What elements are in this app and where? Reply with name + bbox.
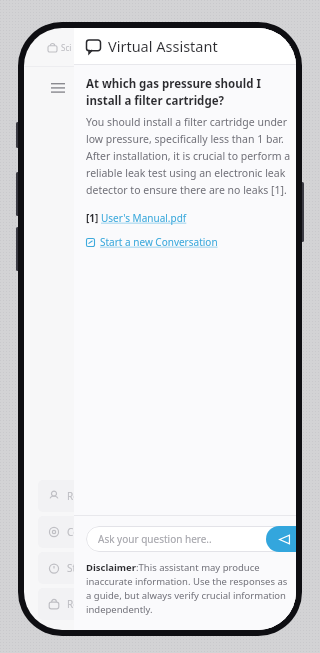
button[interactable]: Send — [266, 526, 296, 552]
staticText: Re — [67, 489, 79, 503]
staticText: Disclaimer:This assistant may produce in… — [86, 561, 294, 616]
staticText: Start a new Conversation — [100, 235, 218, 249]
staticText: [1] — [86, 211, 101, 225]
staticText: User's Manual.pdf — [101, 211, 187, 225]
staticText: You should install a filter cartridge un… — [86, 115, 294, 197]
staticText: St — [67, 561, 77, 575]
staticText: Co — [67, 525, 80, 539]
button[interactable]: Ask your question here.. — [86, 526, 296, 552]
button[interactable]: Start a new Conversation — [86, 235, 218, 249]
button[interactable]: Re — [38, 588, 198, 620]
staticText: At which gas pressure should I install a… — [86, 76, 294, 109]
staticText: Ask your question here.. — [98, 532, 212, 546]
button[interactable]: Co — [38, 516, 198, 548]
button[interactable]: Close — [284, 34, 296, 50]
staticText: Virtual Assistant — [108, 36, 218, 56]
button[interactable]: St — [38, 552, 198, 584]
button[interactable]: Re — [38, 480, 198, 512]
staticText: Re — [67, 597, 79, 611]
button[interactable]: [1] — [86, 211, 187, 225]
staticText: Sci — [61, 42, 72, 53]
